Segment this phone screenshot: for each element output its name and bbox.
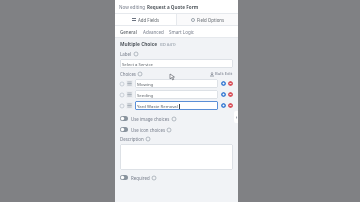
button[interactable]: Advanced <box>143 29 164 35</box>
staticText: Multiple Choice <box>120 41 158 48</box>
staticText: Now editing <box>119 4 147 10</box>
button[interactable]: Remove choice <box>228 92 233 97</box>
button[interactable] <box>120 144 233 170</box>
staticText: Smart Logic <box>169 29 195 35</box>
staticText: Request a Quote Form <box>147 4 199 10</box>
staticText: Select a Service <box>122 61 153 67</box>
button[interactable]: Seeding <box>120 89 233 100</box>
staticText: Use icon choices <box>131 127 165 133</box>
staticText: Choices <box>120 71 136 77</box>
staticText: Description <box>120 136 144 142</box>
button[interactable]: Mowing <box>120 78 233 89</box>
staticText: Required <box>131 175 150 181</box>
button[interactable]: Remove choice <box>228 81 233 86</box>
button[interactable]: Smart Logic <box>169 29 195 35</box>
button[interactable]: Remove choice <box>228 103 233 108</box>
button[interactable]: Add Fields <box>115 14 176 25</box>
staticText: Field Options <box>197 17 225 23</box>
staticText: Mowing <box>137 81 154 87</box>
staticText: Advanced <box>143 29 164 35</box>
button[interactable]: Select a Service <box>120 59 233 68</box>
button[interactable]: Field Options <box>177 14 238 25</box>
staticText: Add Fields <box>138 17 160 23</box>
staticText: Yard Waste Removal <box>137 103 178 109</box>
button[interactable]: Collapse panel <box>234 111 238 123</box>
button[interactable]: Use icon choices <box>120 124 233 135</box>
staticText: General <box>120 29 137 35</box>
staticText: Bulk Edit <box>215 71 233 77</box>
button[interactable]: Use image choices <box>120 113 233 124</box>
button[interactable]: General <box>119 26 138 37</box>
button[interactable]: Add choice <box>221 81 226 86</box>
staticText: Seeding <box>137 92 154 98</box>
button[interactable]: Add choice <box>221 103 226 108</box>
button[interactable]: Add choice <box>221 92 226 97</box>
button[interactable]: Yard Waste Removal <box>120 100 233 111</box>
staticText: Label <box>120 51 132 57</box>
staticText: (ID #41) <box>160 42 176 48</box>
staticText: Use image choices <box>131 116 170 122</box>
button[interactable]: Required <box>120 172 233 183</box>
button[interactable]: Bulk Edit <box>210 71 233 77</box>
